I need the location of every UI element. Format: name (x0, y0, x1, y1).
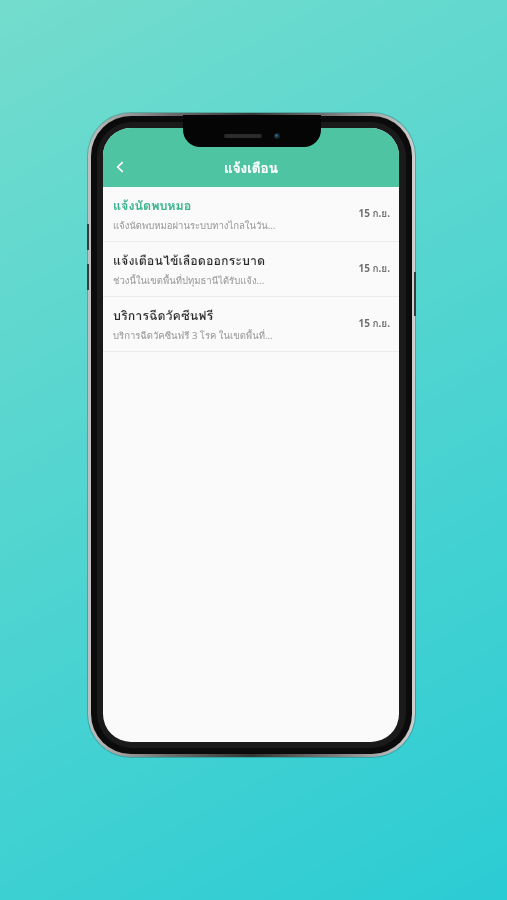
staticText: 15 ก.ย. (358, 261, 390, 277)
staticText: บริการฉีดวัคซีนฟรี (113, 306, 214, 326)
button[interactable]: บริการฉีดวัคซีนฟรี (103, 297, 399, 352)
button[interactable]: แจ้งนัดพบหมอ (103, 187, 399, 242)
staticText: ช่วงนี้ในเขตพื้นที่ปทุมธานีได้รับแจ้ง... (113, 273, 265, 288)
staticText: บริการฉีดวัคซีนฟรี 3 โรค ในเขตพื้นที่... (113, 328, 273, 343)
staticText: 15 ก.ย. (358, 316, 390, 332)
button[interactable]: แจ้งเตือนไข้เลือดออกระบาด (103, 242, 399, 297)
button[interactable]: Back (103, 150, 137, 184)
staticText: 15 ก.ย. (358, 206, 390, 222)
staticText: แจ้งเตือนไข้เลือดออกระบาด (113, 251, 266, 271)
staticText: แจ้งนัดพบหมอผ่านระบบทางไกลในวัน... (113, 218, 276, 233)
staticText: แจ้งนัดพบหมอ (113, 196, 192, 216)
staticText: แจ้งเตือน (224, 157, 278, 178)
